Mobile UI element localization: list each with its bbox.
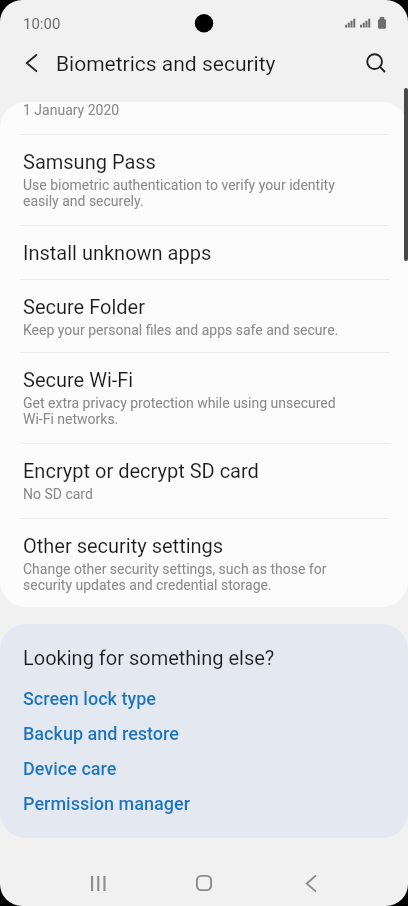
staticText: Backup and restore [23, 723, 179, 744]
staticText: Install unknown apps [23, 241, 212, 264]
button[interactable]: Navigate up [7, 46, 55, 80]
staticText: Secure Folder [23, 295, 145, 318]
staticText: Encrypt or decrypt SD card [23, 459, 259, 482]
staticText: 10:00 [23, 15, 61, 33]
staticText: Change other security settings, such as … [23, 561, 327, 593]
button[interactable]: Home [173, 859, 235, 906]
staticText: Device care [23, 758, 117, 779]
staticText: Other security settings [23, 534, 224, 557]
button[interactable]: Back [280, 859, 342, 906]
button[interactable]: Encrypt or decrypt SD card [0, 444, 408, 518]
staticText: Samsung Pass [23, 150, 156, 173]
button[interactable]: Recent apps [67, 859, 129, 906]
staticText: Use biometric authentication to verify y… [23, 177, 335, 209]
button[interactable]: Secure Folder [0, 280, 408, 352]
button[interactable]: Screen lock type [23, 681, 408, 716]
staticText: Secure Wi-Fi [23, 368, 134, 391]
button[interactable]: Other security settings [0, 519, 408, 607]
staticText: 1 January 2020 [23, 102, 120, 118]
staticText: No SD card [23, 486, 93, 502]
button[interactable]: Search [352, 47, 401, 79]
staticText: Get extra privacy protection while using… [23, 395, 336, 427]
button[interactable]: Backup and restore [23, 716, 408, 751]
button[interactable]: Secure Wi-Fi [0, 353, 408, 443]
button[interactable]: Device care [23, 751, 408, 786]
button[interactable]: Samsung Pass [0, 135, 408, 225]
staticText: Permission manager [23, 793, 190, 814]
staticText: Keep your personal files and apps safe a… [23, 322, 339, 338]
button[interactable]: Install unknown apps [0, 226, 408, 279]
staticText: Looking for something else? [23, 646, 275, 669]
staticText: Screen lock type [23, 688, 156, 709]
staticText: Biometrics and security [56, 52, 276, 77]
button[interactable]: Permission manager [23, 786, 408, 821]
